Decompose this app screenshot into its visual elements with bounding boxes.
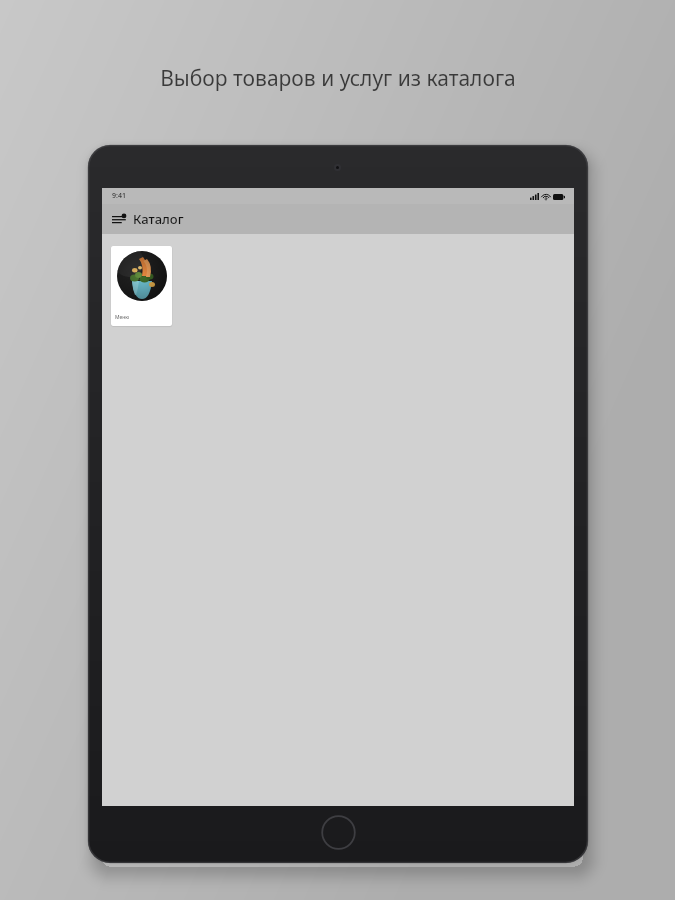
staticText: Каталог [133,210,184,228]
staticText: Меню [115,314,130,321]
button[interactable]: Menu [109,209,129,229]
staticText: 9:41 [112,191,126,201]
button[interactable]: Меню [111,246,172,326]
staticText: Выбор товаров и услуг из каталога [160,64,516,93]
button[interactable]: Home [321,815,356,850]
